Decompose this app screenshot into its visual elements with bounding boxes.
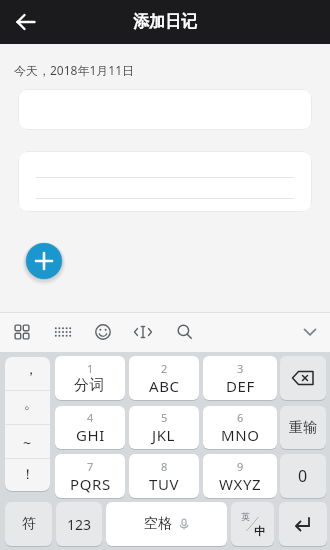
- button[interactable]: 6: [203, 406, 277, 449]
- button[interactable]: 123: [56, 502, 102, 546]
- button[interactable]: [280, 356, 326, 400]
- staticText: PQRS: [70, 474, 111, 494]
- staticText: 6: [237, 410, 244, 425]
- button[interactable]: 符: [5, 502, 52, 546]
- staticText: DEF: [226, 376, 255, 396]
- button[interactable]: ，: [5, 357, 50, 391]
- staticText: 8: [161, 459, 168, 474]
- staticText: 7: [87, 459, 94, 474]
- staticText: 中: [254, 524, 265, 538]
- button[interactable]: 空格: [106, 502, 227, 546]
- button[interactable]: 8: [129, 454, 199, 498]
- button[interactable]: [18, 151, 312, 212]
- staticText: TUV: [149, 474, 180, 494]
- staticText: 3: [237, 361, 244, 376]
- button[interactable]: 4: [55, 406, 125, 449]
- staticText: 英: [241, 511, 250, 522]
- button[interactable]: [0, 0, 52, 44]
- button[interactable]: 。: [5, 391, 50, 425]
- staticText: 空格: [144, 515, 172, 533]
- staticText: ~: [23, 433, 32, 452]
- staticText: 符: [22, 515, 36, 533]
- staticText: GHI: [76, 425, 105, 445]
- staticText: ！: [21, 466, 35, 484]
- button[interactable]: 英: [231, 502, 274, 546]
- button[interactable]: ！: [5, 459, 50, 491]
- button[interactable]: 0: [280, 454, 326, 498]
- staticText: JKL: [152, 425, 176, 445]
- staticText: WXYZ: [219, 474, 262, 494]
- button[interactable]: 1: [55, 356, 125, 400]
- staticText: 4: [87, 410, 94, 425]
- button[interactable]: [26, 243, 62, 279]
- staticText: MNO: [221, 425, 260, 445]
- staticText: 添加日记: [133, 12, 197, 32]
- button[interactable]: 2: [129, 356, 199, 400]
- staticText: 1: [87, 361, 94, 376]
- staticText: ，: [24, 361, 38, 379]
- button[interactable]: 9: [203, 454, 277, 498]
- button[interactable]: ~: [5, 425, 50, 459]
- staticText: 5: [161, 410, 168, 425]
- staticText: 2: [161, 361, 168, 376]
- staticText: 123: [67, 515, 92, 534]
- staticText: 。: [24, 395, 38, 413]
- staticText: 0: [298, 465, 308, 487]
- button[interactable]: [18, 89, 312, 130]
- staticText: ABC: [149, 376, 180, 396]
- staticText: 9: [237, 459, 244, 474]
- staticText: 重输: [289, 419, 317, 437]
- button[interactable]: 重输: [280, 406, 326, 449]
- staticText: 今天，2018年1月11日: [14, 62, 135, 78]
- button[interactable]: 7: [55, 454, 125, 498]
- button[interactable]: [279, 502, 327, 546]
- button[interactable]: 5: [129, 406, 199, 449]
- staticText: 分词: [74, 376, 106, 395]
- button[interactable]: 3: [203, 356, 277, 400]
